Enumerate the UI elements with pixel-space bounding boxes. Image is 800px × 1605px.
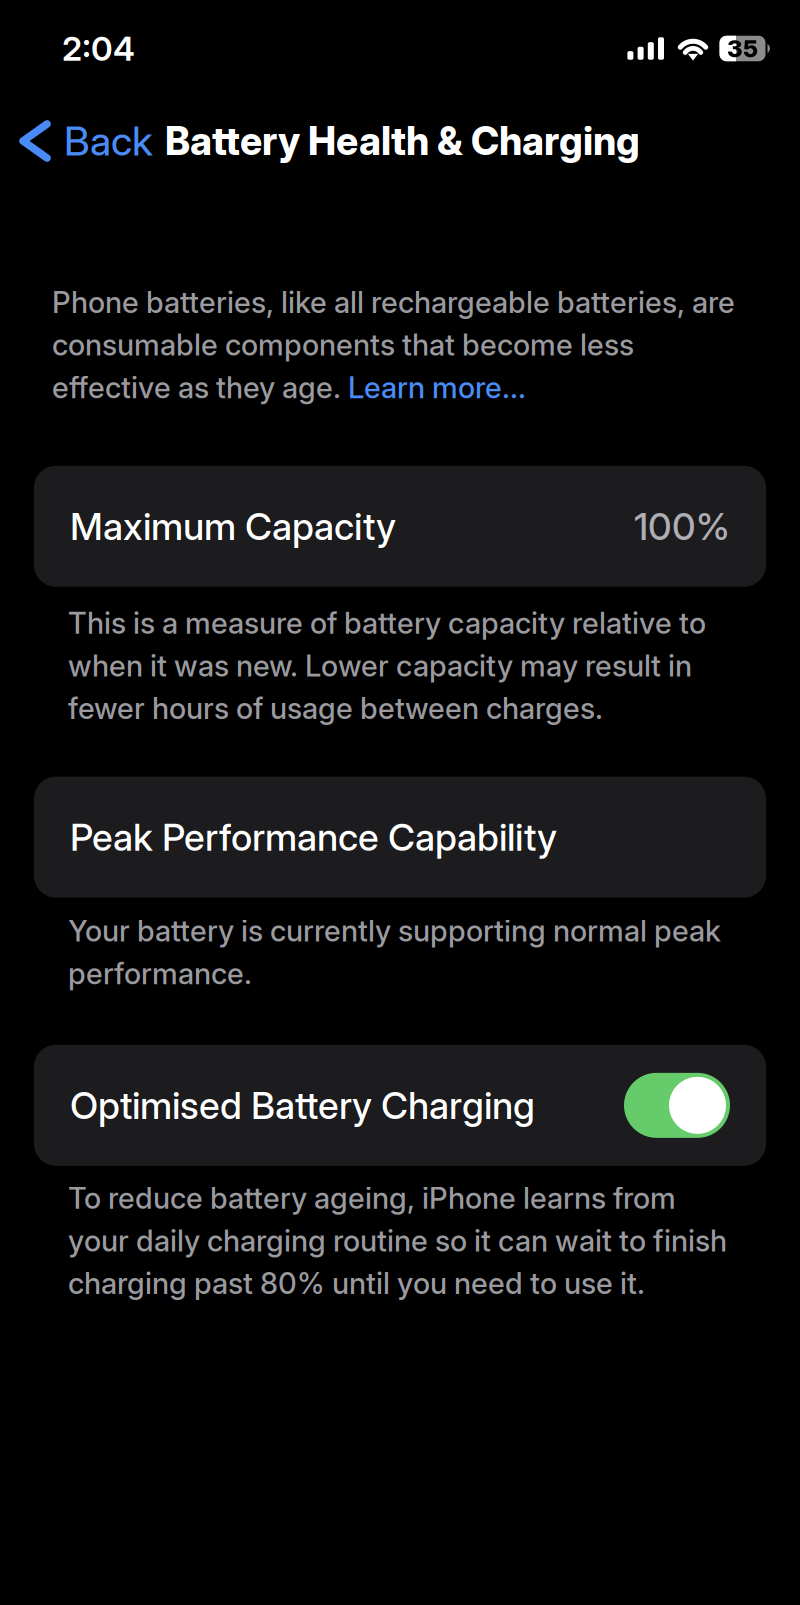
staticText: 100% bbox=[634, 504, 730, 548]
button[interactable]: Optimised Battery Charging bbox=[0, 1045, 800, 1166]
staticText: Maximum Capacity bbox=[70, 504, 396, 548]
staticText: 35 bbox=[727, 34, 758, 63]
staticText: Your battery is currently supporting nor… bbox=[68, 914, 721, 991]
staticText: Battery Health & Charging bbox=[165, 118, 640, 164]
button[interactable]: Maximum Capacity bbox=[0, 466, 800, 587]
staticText: Back bbox=[64, 117, 153, 165]
staticText: Optimised Battery Charging bbox=[70, 1083, 535, 1127]
button[interactable]: Peak Performance Capability bbox=[0, 777, 800, 898]
staticText: To reduce battery ageing, iPhone learns … bbox=[68, 1181, 727, 1301]
staticText: Peak Performance Capability bbox=[70, 815, 557, 859]
staticText: This is a measure of battery capacity re… bbox=[68, 606, 706, 726]
button[interactable]: Back bbox=[0, 101, 165, 181]
staticText: 2:04 bbox=[62, 29, 135, 68]
staticText: Phone batteries, like all rechargeable b… bbox=[52, 285, 735, 405]
